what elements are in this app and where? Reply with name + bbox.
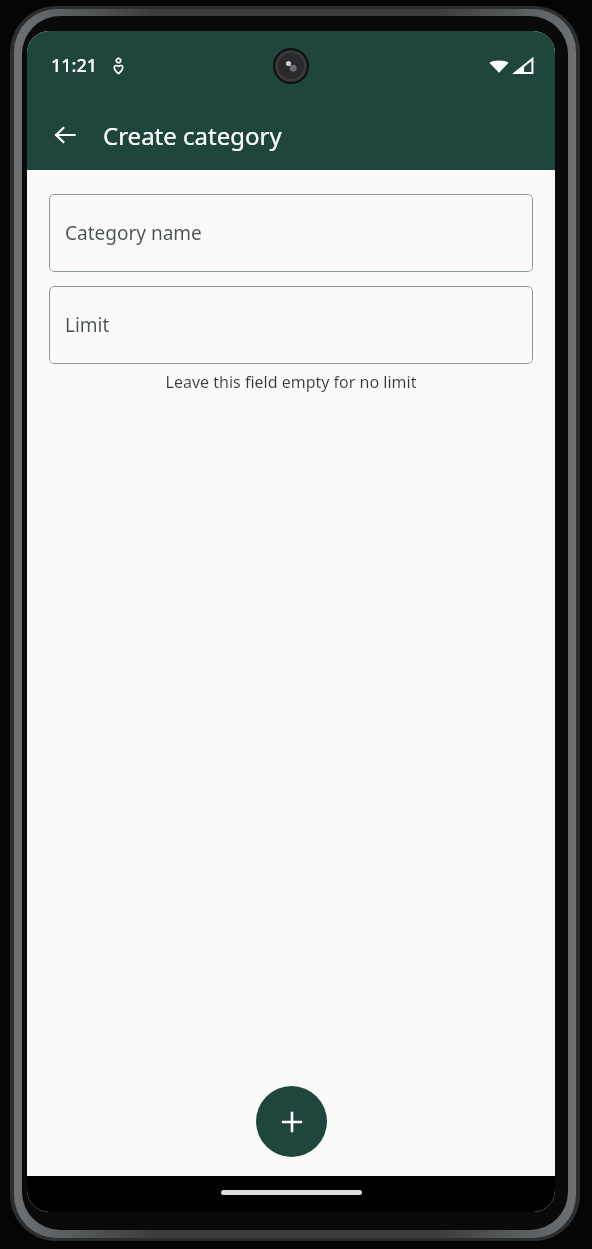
staticText: Category name [65, 220, 202, 246]
staticText: Create category [103, 119, 282, 152]
staticText: 11:21 [51, 53, 98, 78]
staticText: Limit [65, 312, 110, 338]
button[interactable]: Category name [49, 194, 533, 272]
staticText: Leave this field empty for no limit [49, 371, 533, 393]
button[interactable]: Back [41, 111, 89, 159]
button[interactable]: Add category [256, 1086, 327, 1157]
button[interactable]: Limit [49, 286, 533, 364]
